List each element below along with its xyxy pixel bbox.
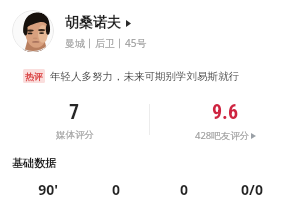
button[interactable]: 热评 — [0, 67, 300, 85]
staticText: 热评 — [25, 71, 43, 82]
staticText: 0/0 — [218, 180, 286, 199]
button[interactable]: Player avatar — [0, 4, 300, 58]
staticText: 0 — [82, 180, 150, 199]
staticText: 基础数据 — [12, 156, 56, 170]
staticText: 428吧友评分 — [195, 129, 250, 142]
staticText: 年轻人多努力，未来可期别学刘易斯就行 — [50, 70, 239, 83]
staticText: 9.6 — [212, 100, 239, 123]
staticText: 曼城丨后卫丨45号 — [65, 36, 147, 50]
button[interactable]: Player avatar — [12, 10, 54, 52]
staticText: 7 — [69, 100, 80, 123]
staticText: 媒体评分 — [56, 129, 94, 141]
staticText: 胡桑诺夫 — [65, 14, 121, 32]
button[interactable]: 9.6 — [150, 100, 300, 142]
staticText: 90' — [14, 180, 82, 199]
button[interactable]: 7 — [0, 100, 149, 141]
staticText: 0 — [150, 180, 218, 199]
